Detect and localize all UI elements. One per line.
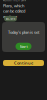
button[interactable]: Continue [3,60,44,66]
staticText: Start [19,44,27,49]
staticText: Continue [14,60,33,66]
button[interactable]: Start [15,43,31,50]
staticText: Plans, which can be edited anytime [3,3,25,19]
staticText: ABOUT THIS PLAN [3,0,26,2]
staticText: ACTIVE [6,17,15,20]
staticText: Today's plan is set [8,29,39,35]
